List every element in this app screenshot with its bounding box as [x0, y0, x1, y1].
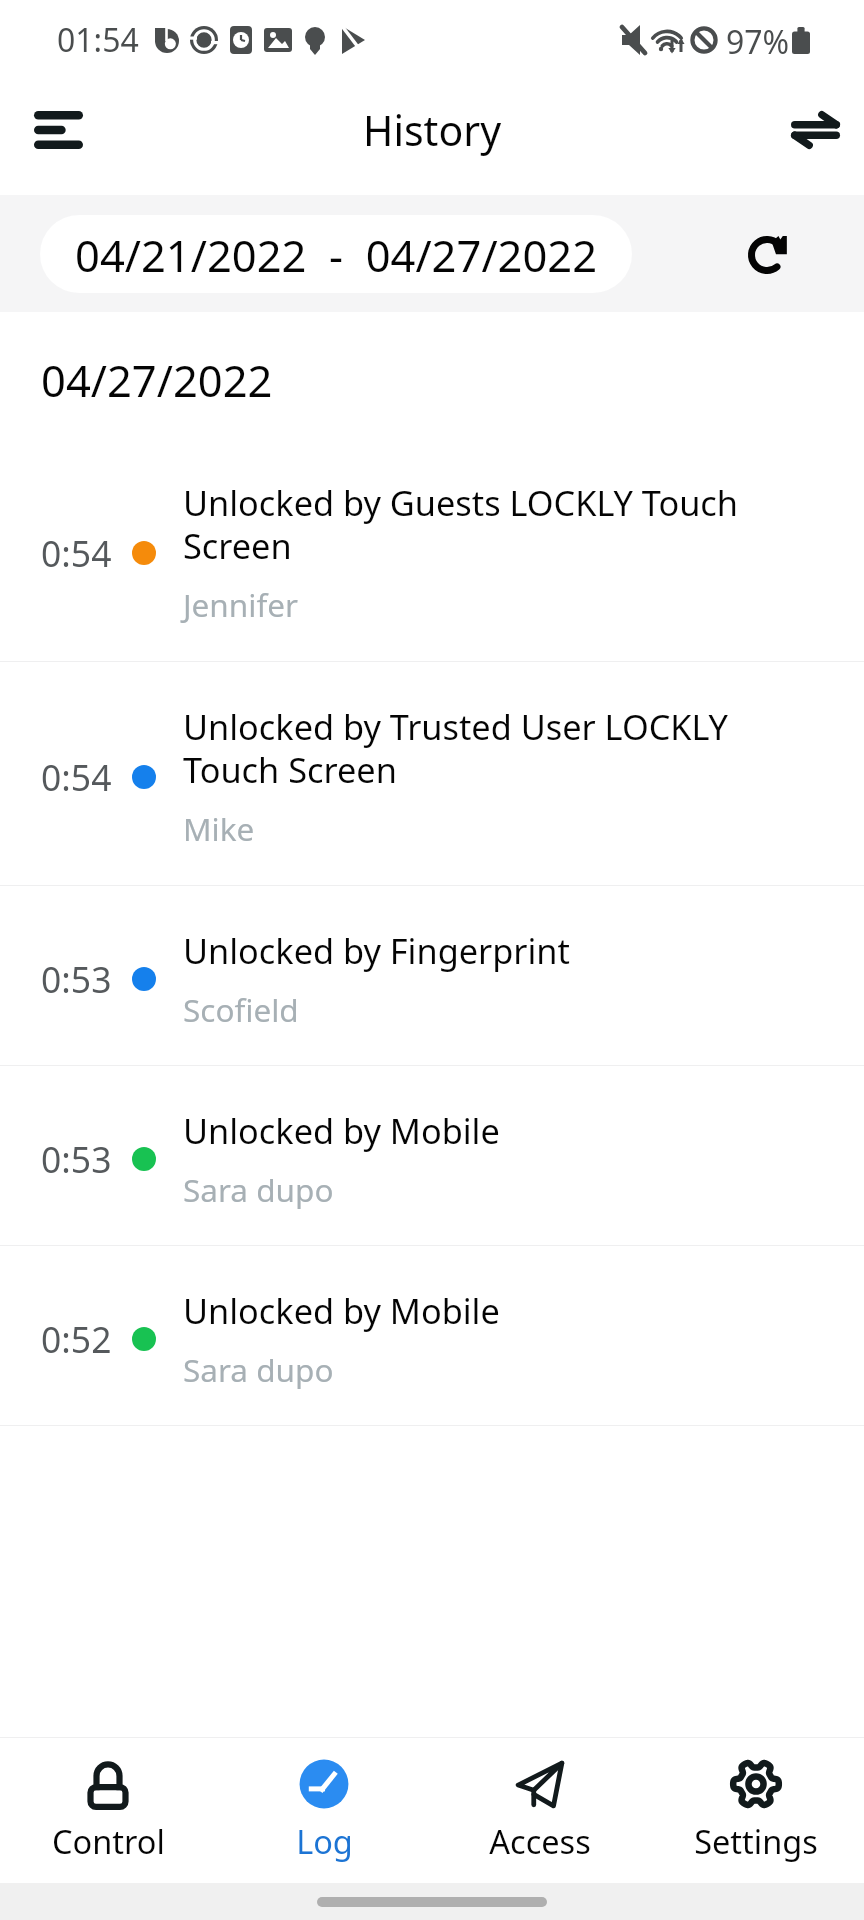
- staticText: Log: [296, 1819, 353, 1863]
- staticText: 0:53: [41, 955, 112, 1003]
- staticText: Settings: [694, 1819, 818, 1863]
- button[interactable]: Control: [0, 1738, 216, 1883]
- staticText: Sara dupo: [183, 1348, 334, 1391]
- staticText: 0:54: [41, 529, 112, 577]
- button[interactable]: Access: [432, 1738, 648, 1883]
- button[interactable]: Menu: [14, 86, 102, 174]
- staticText: 04/21/2022 - 04/27/2022: [75, 225, 598, 284]
- button[interactable]: 04/21/2022 - 04/27/2022: [40, 215, 632, 293]
- button[interactable]: Settings: [648, 1738, 864, 1883]
- staticText: Scofield: [183, 988, 299, 1031]
- button[interactable]: Refresh: [734, 218, 806, 290]
- staticText: Mike: [183, 807, 255, 850]
- staticText: 97%: [726, 20, 790, 60]
- staticText: Unlocked by Trusted User LOCKLY Touch Sc…: [183, 703, 788, 793]
- staticText: Control: [52, 1819, 165, 1863]
- staticText: Unlocked by Guests LOCKLY Touch Screen: [183, 479, 788, 569]
- staticText: Sara dupo: [183, 1168, 334, 1211]
- staticText: 01:54: [57, 18, 139, 62]
- button[interactable]: Log: [216, 1738, 432, 1883]
- staticText: Unlocked by Fingerprint: [183, 927, 570, 974]
- button[interactable]: 0:52: [0, 1246, 864, 1426]
- staticText: 04/27/2022: [41, 350, 273, 409]
- button[interactable]: Swap: [771, 86, 859, 174]
- staticText: Unlocked by Mobile: [183, 1287, 500, 1334]
- staticText: Unlocked by Mobile: [183, 1107, 500, 1154]
- button[interactable]: 0:54: [0, 662, 864, 886]
- button[interactable]: 0:53: [0, 886, 864, 1066]
- staticText: Jennifer: [183, 583, 299, 626]
- staticText: 0:54: [41, 753, 112, 801]
- staticText: Access: [489, 1819, 591, 1863]
- staticText: 0:52: [41, 1315, 112, 1363]
- button[interactable]: 0:53: [0, 1066, 864, 1246]
- staticText: History: [363, 102, 502, 158]
- button[interactable]: 0:54: [0, 438, 864, 662]
- staticText: 0:53: [41, 1135, 112, 1183]
